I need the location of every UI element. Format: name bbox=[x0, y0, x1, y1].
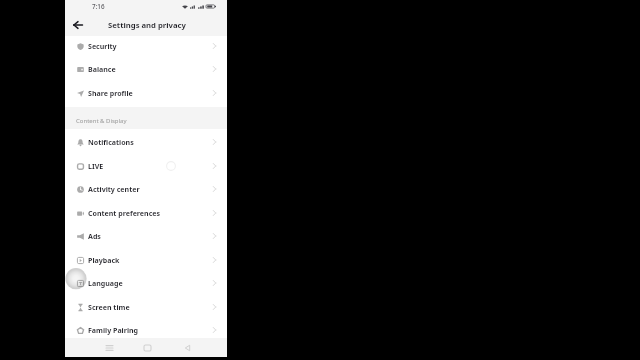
button[interactable]: Home bbox=[139, 340, 155, 356]
button[interactable]: Activity center bbox=[65, 177, 227, 201]
staticText: Playback bbox=[88, 255, 120, 265]
button[interactable]: Notifications bbox=[65, 130, 227, 154]
staticText: Screen time bbox=[88, 302, 130, 312]
staticText: 7:16 bbox=[92, 2, 105, 11]
staticText: Share profile bbox=[88, 88, 133, 98]
button[interactable]: Language bbox=[65, 271, 227, 295]
button[interactable]: LIVE bbox=[65, 154, 227, 178]
staticText: Ads bbox=[88, 231, 101, 241]
button[interactable]: Security bbox=[65, 36, 227, 58]
staticText: Language bbox=[88, 278, 123, 288]
staticText: Family Pairing bbox=[88, 325, 139, 335]
staticText: Balance bbox=[88, 64, 116, 74]
button[interactable]: Balance bbox=[65, 57, 227, 81]
button[interactable]: Screen time bbox=[65, 295, 227, 319]
button[interactable]: Content preferences bbox=[65, 201, 227, 225]
button[interactable]: Back bbox=[179, 340, 195, 356]
staticText: Settings and privacy bbox=[108, 20, 186, 30]
staticText: Activity center bbox=[88, 184, 140, 194]
button[interactable]: Share profile bbox=[65, 81, 227, 105]
staticText: LIVE bbox=[88, 161, 104, 171]
button[interactable]: Ads bbox=[65, 224, 227, 248]
staticText: Content & Display bbox=[76, 117, 127, 125]
button[interactable]: Recent apps bbox=[101, 340, 117, 356]
staticText: Notifications bbox=[88, 137, 134, 147]
button[interactable]: Back bbox=[70, 16, 86, 34]
button[interactable]: Family Pairing bbox=[65, 318, 227, 338]
button[interactable]: Playback bbox=[65, 248, 227, 272]
staticText: Content preferences bbox=[88, 208, 161, 218]
staticText: Security bbox=[88, 41, 117, 51]
